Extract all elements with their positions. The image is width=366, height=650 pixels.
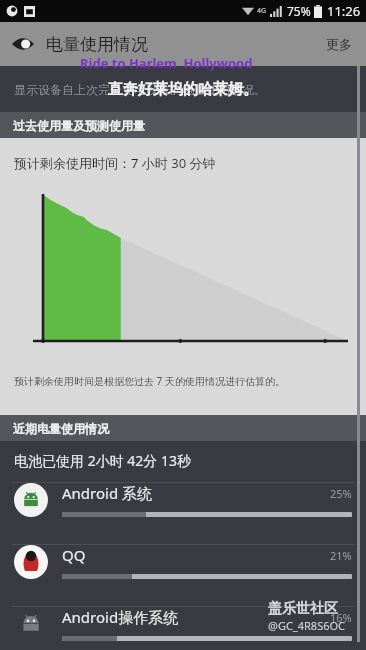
staticText: Android 系统 <box>62 483 330 503</box>
staticText: 近期电量使用情况 <box>13 421 109 436</box>
staticText: 25% <box>330 486 352 501</box>
staticText: 75% <box>287 3 311 19</box>
staticText: 4G <box>257 6 267 16</box>
button[interactable]: Hide <box>10 31 36 57</box>
button[interactable]: Android 系统 <box>0 483 366 544</box>
staticText: 16% <box>330 610 352 625</box>
button[interactable]: QQ <box>0 545 366 606</box>
staticText: 电量使用情况 <box>46 34 148 55</box>
staticText: 21% <box>330 548 352 563</box>
staticText: 显示设备自上次完全充电以来的电量使用情况。 <box>14 82 266 97</box>
staticText: 盖乐世社区 <box>268 600 338 618</box>
staticText: 预计剩余使用时间：7 小时 30 分钟 <box>14 154 216 172</box>
staticText: 11:26 <box>327 2 361 20</box>
button[interactable]: Android操作系统 <box>0 607 366 650</box>
staticText: 预计剩余使用时间是根据您过去 7 天的使用情况进行估算的。 <box>14 374 285 388</box>
staticText: 电池已使用 2小时 42分 13秒 <box>14 451 191 470</box>
staticText: 直奔好莱坞的哈莱姆。 <box>108 80 258 99</box>
staticText: 过去使用量及预测使用量 <box>13 118 145 133</box>
button[interactable]: 更多 <box>326 36 352 52</box>
staticText: Ride to Harlem Hollywood <box>80 54 253 72</box>
staticText: @GC_4R8S6OC <box>268 618 346 633</box>
staticText: Android操作系统 <box>62 607 330 627</box>
staticText: QQ <box>62 545 330 565</box>
staticText: 更多 <box>326 36 352 52</box>
